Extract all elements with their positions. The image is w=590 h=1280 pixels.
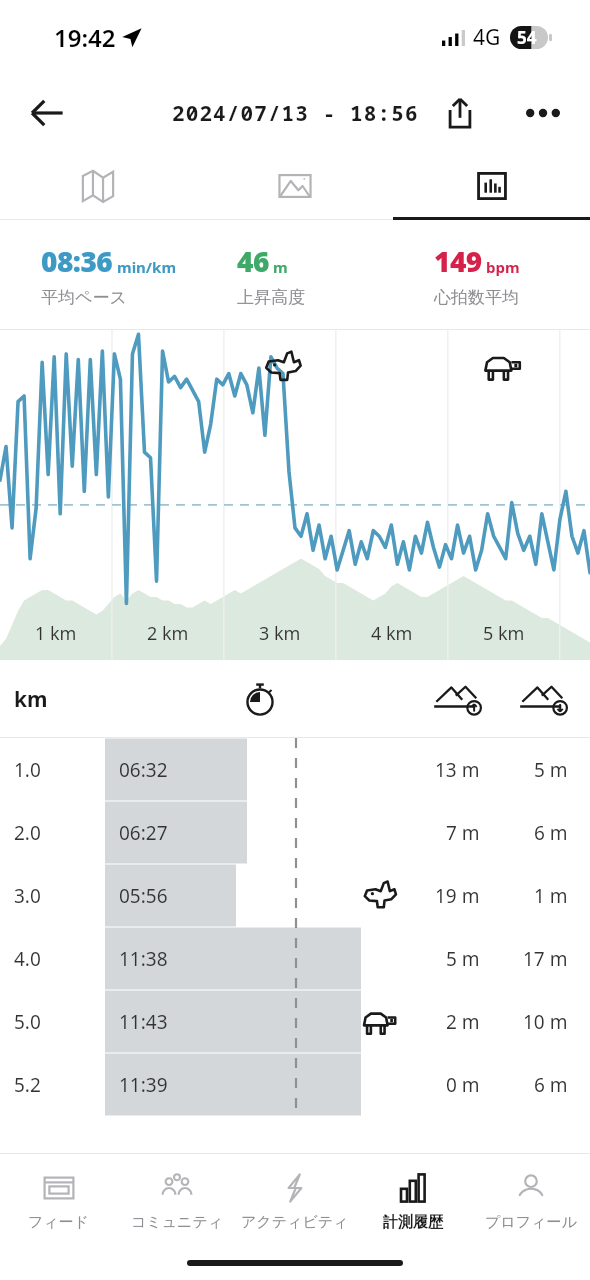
staticText: 7 m <box>446 820 480 846</box>
staticText: 6 m <box>534 820 568 846</box>
staticText: アクティビティ <box>241 1213 349 1232</box>
staticText: 13 m <box>435 757 480 783</box>
button[interactable]: Back <box>14 80 80 146</box>
staticText: 3 km <box>259 621 301 646</box>
staticText: 0 m <box>446 1072 480 1098</box>
button[interactable]: Map <box>0 152 196 220</box>
staticText: 2024/07/13 - 18:56 <box>172 99 419 128</box>
staticText: 4.0 <box>14 946 41 972</box>
staticText: 11:38 <box>119 946 168 972</box>
staticText: 計測履歴 <box>383 1213 443 1232</box>
staticText: 17 m <box>523 946 568 972</box>
staticText: 3.0 <box>14 883 41 909</box>
staticText: 11:43 <box>119 1009 168 1035</box>
staticText: コミュニティ <box>131 1213 224 1232</box>
staticText: 19:42 <box>54 21 116 54</box>
button[interactable]: 5.0 <box>0 990 590 1053</box>
button[interactable]: Share <box>430 83 490 143</box>
staticText: 54 <box>517 26 537 49</box>
staticText: min/km <box>117 257 177 277</box>
staticText: 06:27 <box>119 820 168 846</box>
staticText: 5.0 <box>14 1009 41 1035</box>
staticText: 5 km <box>483 621 525 646</box>
staticText: 10 m <box>523 1009 568 1035</box>
staticText: プロフィール <box>485 1213 577 1232</box>
staticText: 46 <box>237 242 269 280</box>
staticText: 5.2 <box>14 1072 41 1098</box>
button[interactable]: コミュニティ <box>118 1154 236 1246</box>
staticText: 5 m <box>446 946 480 972</box>
staticText: 11:39 <box>119 1072 168 1098</box>
staticText: 149 <box>434 242 482 280</box>
button[interactable]: Charts <box>393 152 590 220</box>
staticText: 平均ペース <box>41 287 127 308</box>
staticText: 2 km <box>147 621 189 646</box>
staticText: 08:36 <box>41 242 113 280</box>
button[interactable]: Photos <box>196 152 393 220</box>
button[interactable]: 2.0 <box>0 801 590 864</box>
button[interactable]: More options <box>512 82 574 144</box>
staticText: km <box>14 685 48 714</box>
button[interactable]: 計測履歴 <box>354 1154 472 1246</box>
button[interactable]: 1.0 <box>0 738 590 801</box>
button[interactable]: プロフィール <box>472 1154 590 1246</box>
staticText: 6 m <box>534 1072 568 1098</box>
button[interactable]: 3.0 <box>0 864 590 927</box>
staticText: 2.0 <box>14 820 41 846</box>
staticText: m <box>273 257 288 277</box>
staticText: bpm <box>486 257 520 277</box>
staticText: 4G <box>473 23 501 52</box>
staticText: 05:56 <box>119 883 168 909</box>
staticText: 19 m <box>435 883 480 909</box>
button[interactable]: 5.2 <box>0 1053 590 1116</box>
button[interactable]: 4.0 <box>0 927 590 990</box>
staticText: 1 km <box>35 621 77 646</box>
button[interactable]: フィード <box>0 1154 118 1246</box>
staticText: フィード <box>28 1213 90 1232</box>
staticText: 1.0 <box>14 757 41 783</box>
staticText: 上昇高度 <box>237 287 305 308</box>
staticText: 2 m <box>446 1009 480 1035</box>
staticText: 心拍数平均 <box>434 287 519 308</box>
staticText: 4 km <box>371 621 413 646</box>
staticText: 5 m <box>534 757 568 783</box>
staticText: 1 m <box>534 883 568 909</box>
staticText: 06:32 <box>119 757 168 783</box>
button[interactable]: アクティビティ <box>236 1154 354 1246</box>
